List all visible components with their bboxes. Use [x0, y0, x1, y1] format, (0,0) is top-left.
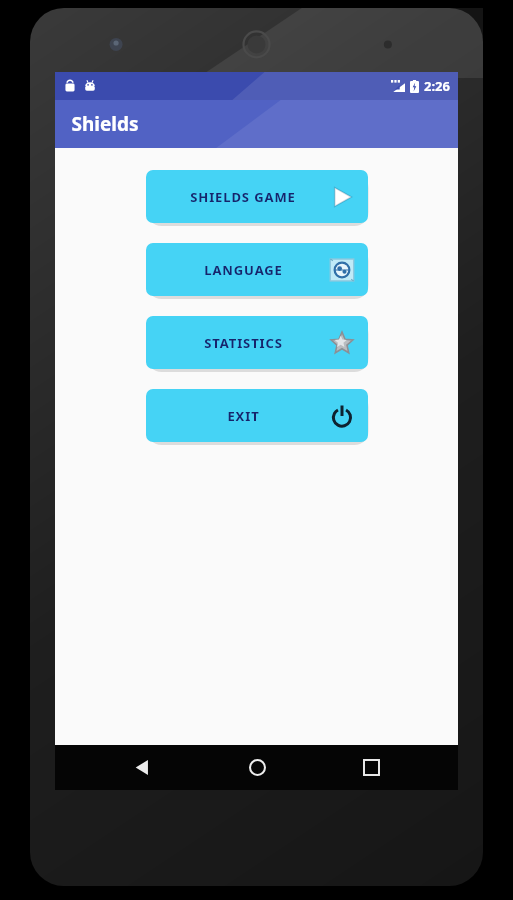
button[interactable]: Back — [114, 745, 170, 790]
staticText: STATISTICS — [204, 334, 283, 352]
staticText: Shields — [71, 111, 139, 137]
button[interactable]: Home — [229, 745, 285, 790]
button[interactable]: STATISTICS — [146, 316, 368, 369]
staticText: 2:26 — [424, 77, 450, 95]
staticText: SHIELDS GAME — [190, 188, 296, 206]
staticText: EXIT — [227, 407, 260, 425]
button[interactable]: SHIELDS GAME — [146, 170, 368, 223]
button[interactable]: Recent apps — [343, 745, 399, 790]
staticText: LANGUAGE — [204, 261, 283, 279]
button[interactable]: LANGUAGE — [146, 243, 368, 296]
button[interactable]: EXIT — [146, 389, 368, 442]
